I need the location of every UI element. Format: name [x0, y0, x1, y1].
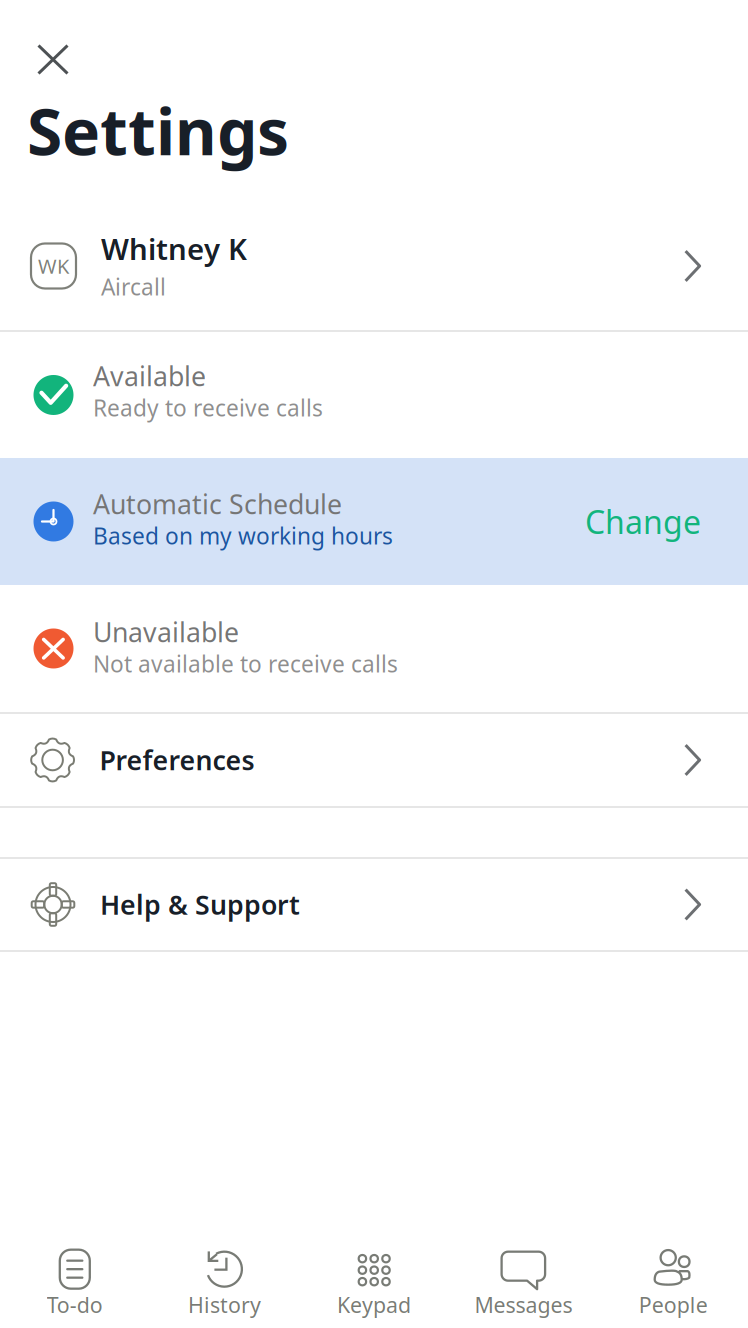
staticText: Settings [27, 88, 289, 173]
staticText: Unavailable [93, 614, 239, 650]
staticText: To-do [47, 1291, 103, 1319]
staticText: Preferences [100, 742, 255, 778]
staticText: Change [585, 500, 701, 543]
staticText: Aircall [101, 272, 166, 302]
staticText: Based on my working hours [93, 521, 393, 551]
staticText: Whitney K [101, 229, 247, 268]
staticText: Ready to receive calls [93, 393, 323, 423]
button[interactable]: Help & Support [0, 859, 748, 950]
button[interactable]: Close [37, 44, 69, 75]
staticText: WK [38, 253, 69, 279]
button[interactable]: People [598, 1244, 748, 1319]
staticText: People [639, 1291, 708, 1319]
button[interactable]: Keypad [299, 1244, 449, 1319]
staticText: History [188, 1291, 261, 1319]
staticText: Keypad [337, 1291, 411, 1319]
button[interactable]: Preferences [0, 714, 748, 806]
staticText: Not available to receive calls [93, 649, 398, 679]
staticText: Messages [475, 1291, 573, 1319]
button[interactable]: History [150, 1244, 299, 1319]
button[interactable]: To-do [0, 1244, 150, 1319]
staticText: Help & Support [100, 887, 300, 922]
button[interactable]: Unavailable [0, 585, 748, 712]
button[interactable]: Available [0, 332, 748, 458]
staticText: Automatic Schedule [93, 486, 342, 522]
button[interactable]: Automatic Schedule [0, 458, 748, 585]
staticText: Available [93, 358, 206, 394]
button[interactable]: WK [0, 202, 748, 330]
button[interactable]: Messages [449, 1244, 598, 1319]
